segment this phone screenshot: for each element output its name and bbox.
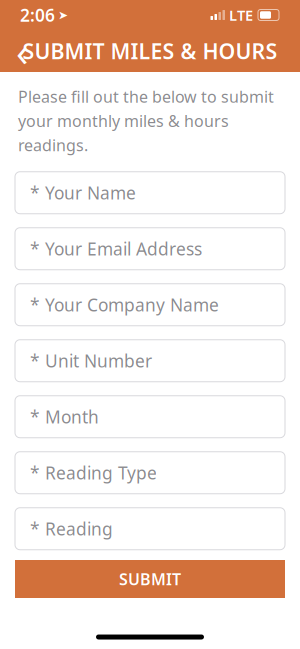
- staticText: * Reading: [30, 517, 113, 540]
- button[interactable]: * Month: [15, 396, 285, 438]
- staticText: * Month: [30, 405, 99, 428]
- staticText: ‹: [16, 24, 28, 77]
- button[interactable]: * Unit Number: [15, 340, 285, 382]
- staticText: 2:06: [20, 3, 55, 26]
- staticText: * Your Name: [30, 181, 136, 204]
- staticText: LTE: [229, 5, 253, 25]
- button[interactable]: * Reading Type: [15, 452, 285, 494]
- staticText: SUBMIT MILES & HOURS: [22, 37, 277, 65]
- button[interactable]: SUBMIT: [15, 560, 285, 598]
- button[interactable]: Back: [0, 31, 44, 71]
- staticText: Please fill out the below to submit your…: [18, 86, 274, 156]
- button[interactable]: * Your Email Address: [15, 228, 285, 270]
- staticText: ➤: [58, 8, 68, 22]
- staticText: * Unit Number: [30, 349, 152, 372]
- button[interactable]: * Reading: [15, 508, 285, 550]
- staticText: SUBMIT: [119, 568, 181, 590]
- staticText: * Reading Type: [30, 461, 157, 484]
- staticText: * Your Company Name: [30, 293, 219, 316]
- staticText: * Your Email Address: [30, 237, 202, 260]
- button[interactable]: * Your Company Name: [15, 284, 285, 326]
- button[interactable]: * Your Name: [15, 172, 285, 214]
